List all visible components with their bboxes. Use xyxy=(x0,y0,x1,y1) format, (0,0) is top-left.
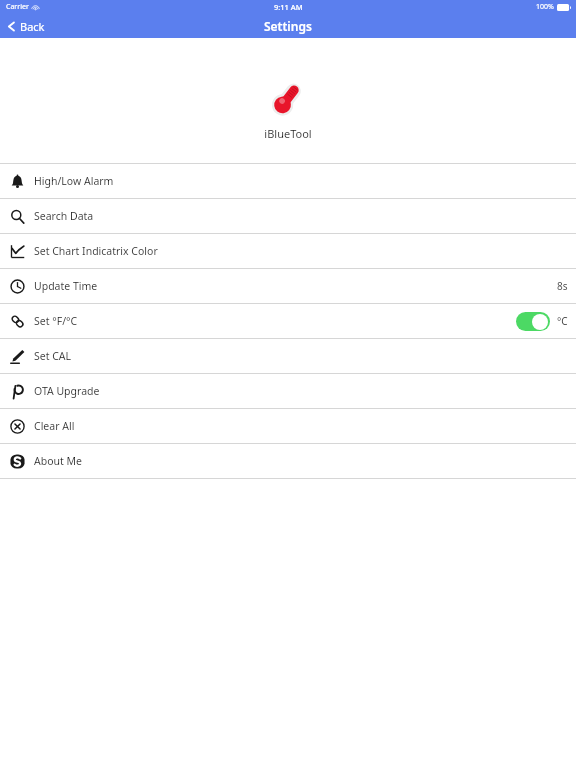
button[interactable]: Update Time xyxy=(0,269,576,303)
staticText: High/Low Alarm xyxy=(34,174,114,188)
button[interactable]: Set CAL xyxy=(0,339,576,373)
staticText: Clear All xyxy=(34,419,75,433)
button[interactable]: Search Data xyxy=(0,199,576,233)
staticText: OTA Upgrade xyxy=(34,384,100,398)
staticText: Carrier xyxy=(6,2,29,12)
staticText: 9:11 AM xyxy=(274,2,303,12)
button[interactable]: Back xyxy=(0,17,55,36)
staticText: Set Chart Indicatrix Color xyxy=(34,244,158,258)
button[interactable]: High/Low Alarm xyxy=(0,164,576,198)
staticText: °C xyxy=(557,314,568,328)
staticText: Update Time xyxy=(34,279,98,293)
button[interactable]: Set Chart Indicatrix Color xyxy=(0,234,576,268)
staticText: 8s xyxy=(557,279,568,293)
staticText: Search Data xyxy=(34,209,94,223)
staticText: iBlueTool xyxy=(264,126,312,141)
staticText: About Me xyxy=(34,454,82,468)
staticText: Back xyxy=(20,19,45,34)
staticText: 100% xyxy=(536,2,554,12)
button[interactable]: Clear All xyxy=(0,409,576,443)
staticText: Set °F/°C xyxy=(34,314,78,328)
button[interactable]: Toggle Fahrenheit Celsius xyxy=(516,312,550,331)
staticText: Settings xyxy=(264,18,312,34)
button[interactable]: OTA Upgrade xyxy=(0,374,576,408)
button[interactable]: About Me xyxy=(0,444,576,478)
staticText: Set CAL xyxy=(34,349,72,363)
button[interactable]: Set °F/°C xyxy=(0,304,576,338)
